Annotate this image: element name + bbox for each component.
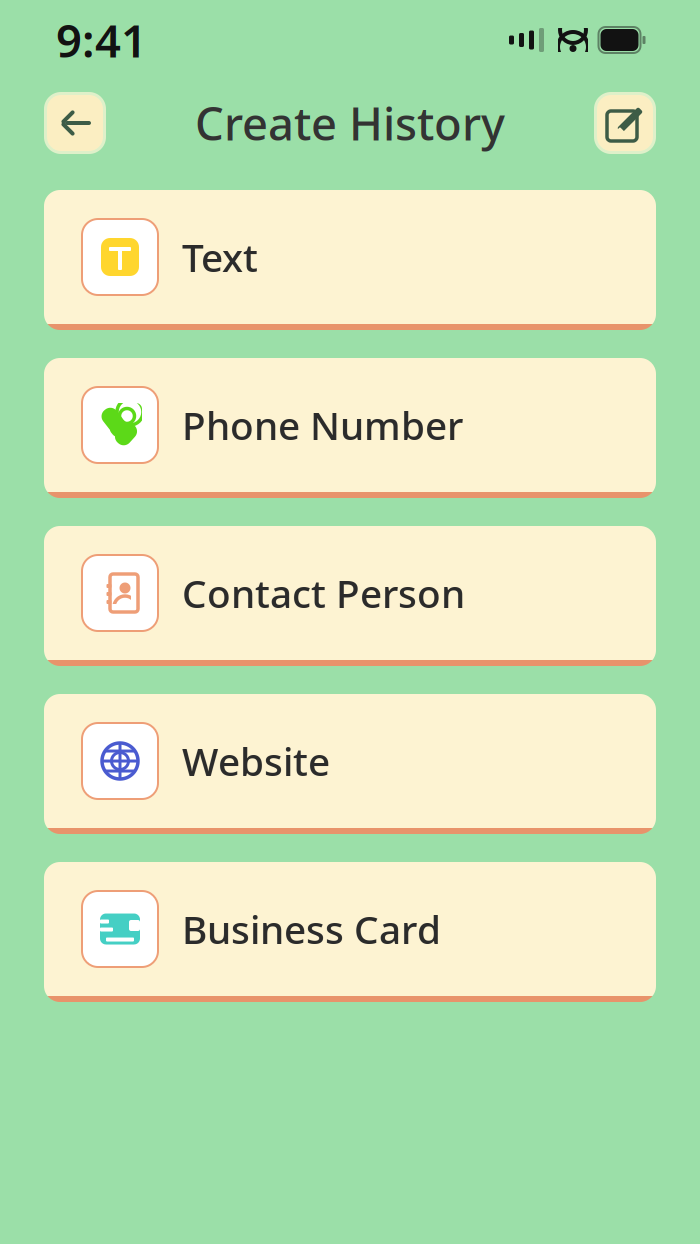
button[interactable]: Text (44, 190, 656, 330)
button[interactable]: Contact Person (44, 526, 656, 666)
button[interactable]: Phone Number (44, 358, 656, 498)
staticText: 9:41 (56, 10, 147, 70)
staticText: Business Card (182, 903, 441, 955)
button[interactable]: Edit (594, 92, 656, 154)
staticText: Phone Number (182, 399, 463, 451)
staticText: Create History (195, 93, 505, 153)
button[interactable]: Back (44, 92, 106, 154)
button[interactable]: Website (44, 694, 656, 834)
button[interactable]: Business Card (44, 862, 656, 1002)
staticText: Website (182, 735, 330, 787)
staticText: Text (182, 231, 258, 283)
staticText: Contact Person (182, 567, 465, 619)
